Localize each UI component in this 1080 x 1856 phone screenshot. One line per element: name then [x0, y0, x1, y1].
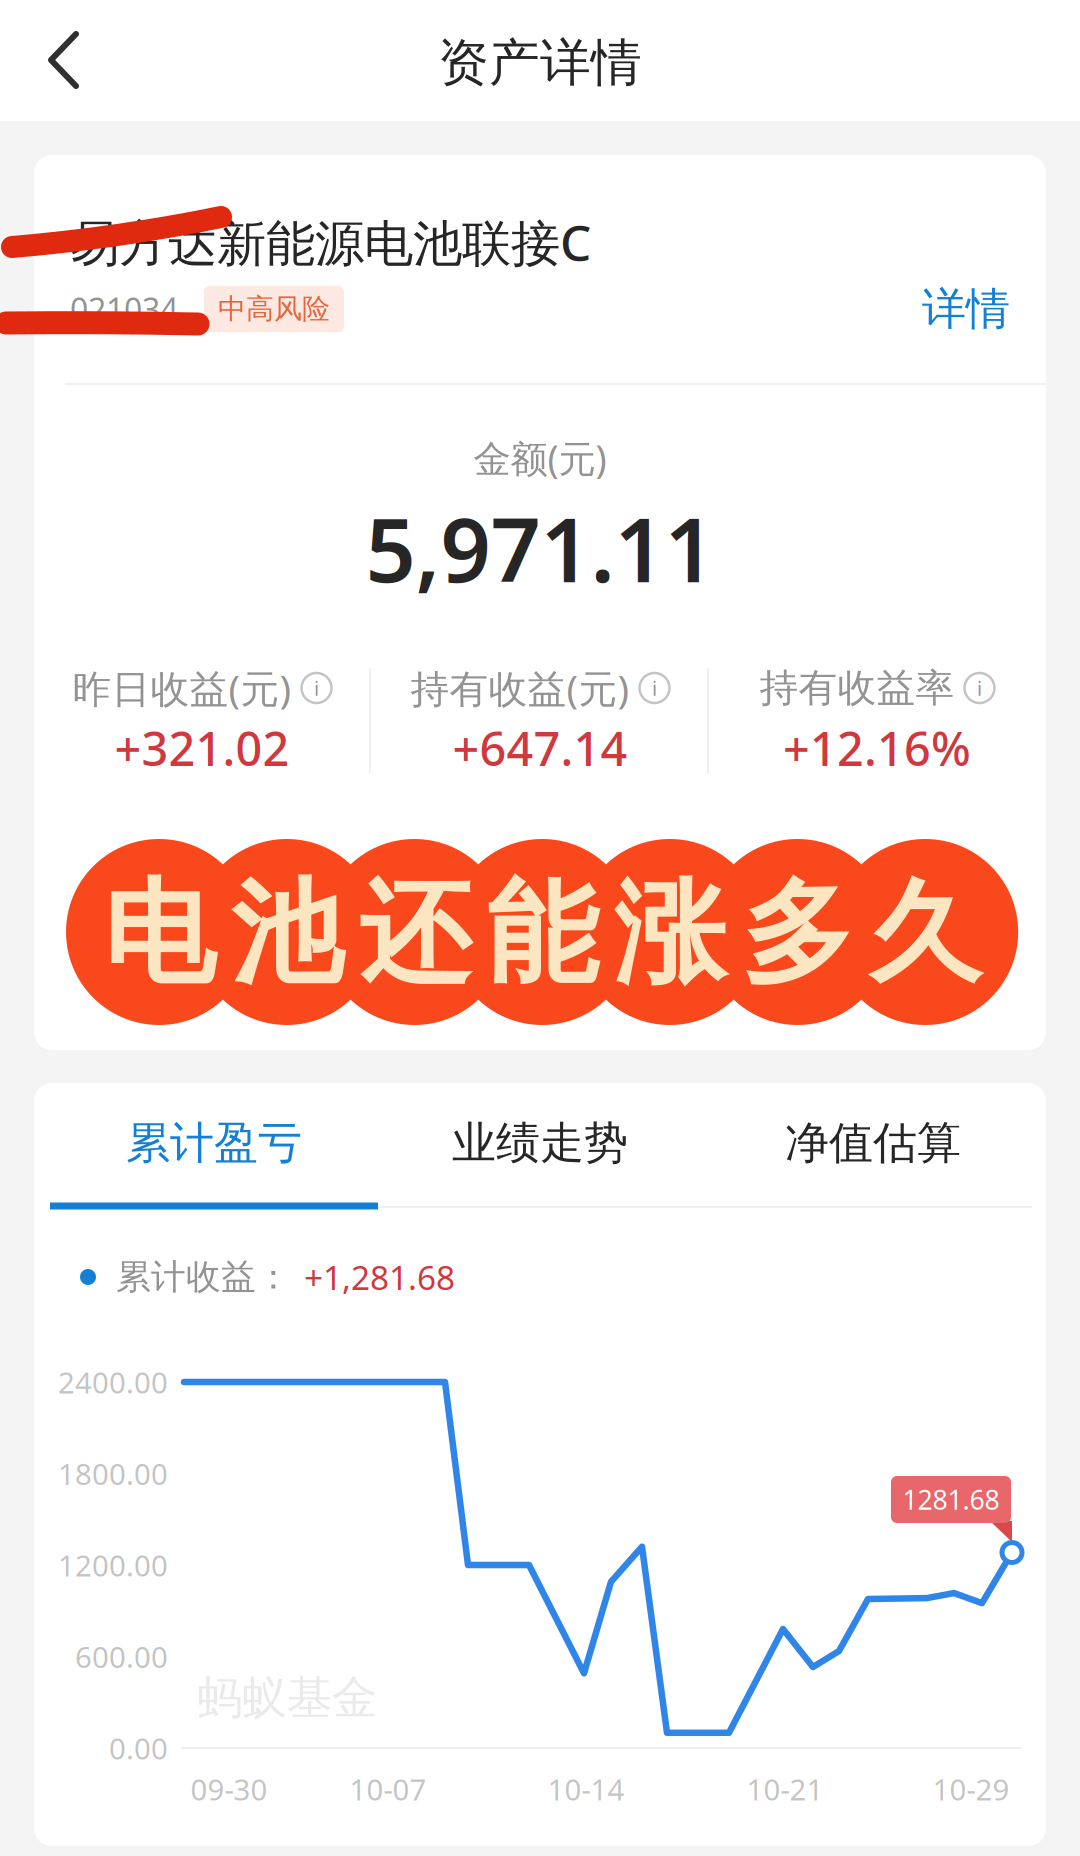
staticText: 累计收益： [116, 1256, 291, 1298]
staticText: 持有收益率 [759, 664, 954, 712]
button[interactable]: 详情 [922, 282, 1010, 336]
staticText: +321.02 [114, 717, 289, 779]
staticText: 0.00 [109, 1728, 168, 1767]
staticText: i [652, 675, 657, 701]
staticText: 1800.00 [58, 1454, 168, 1493]
button[interactable]: 说明 [639, 673, 669, 703]
staticText: 10-21 [746, 1769, 823, 1808]
staticText: 2400.00 [58, 1362, 168, 1401]
staticText: 021034 [70, 288, 178, 330]
button[interactable]: 说明 [301, 673, 331, 703]
staticText: 净值估算 [785, 1116, 961, 1170]
staticText: i [314, 675, 319, 701]
staticText: 涨 [614, 865, 726, 1003]
staticText: 10-07 [349, 1769, 426, 1808]
staticText: 09-30 [190, 1769, 267, 1808]
button[interactable]: 业绩走势 [375, 1093, 705, 1193]
staticText: 持有收益(元) [410, 662, 629, 714]
staticText: 中高风险 [218, 292, 330, 326]
staticText: +12.16% [783, 717, 971, 779]
staticText: 能 [486, 865, 598, 1003]
button[interactable]: 净值估算 [708, 1093, 1038, 1193]
staticText: 600.00 [75, 1637, 168, 1676]
staticText: 电 [103, 865, 215, 1003]
staticText: 金额(元) [473, 433, 606, 483]
staticText: 池 [231, 865, 343, 1003]
staticText: 业绩走势 [452, 1116, 628, 1170]
staticText: 久 [869, 865, 981, 1003]
button[interactable]: 累计盈亏 [49, 1093, 379, 1193]
staticText: 累计盈亏 [126, 1116, 302, 1170]
staticText: i [977, 675, 982, 701]
staticText: 详情 [922, 282, 1010, 336]
button[interactable]: 说明 [964, 673, 994, 703]
staticText: 1281.68 [902, 1482, 999, 1517]
staticText: 10-14 [547, 1769, 624, 1808]
staticText: 10-29 [932, 1769, 1009, 1808]
staticText: 5,971.11 [365, 490, 714, 606]
staticText: +647.14 [452, 717, 627, 779]
staticText: 多 [741, 865, 853, 1003]
staticText: 还 [358, 865, 470, 1003]
button[interactable]: Back [34, 12, 92, 108]
staticText: 易方达新能源电池联接C [70, 209, 591, 275]
staticText: +1,281.68 [304, 1255, 455, 1299]
staticText: 昨日收益(元) [72, 662, 291, 714]
staticText: 1200.00 [58, 1545, 168, 1584]
staticText: 蚂蚁基金 [197, 1670, 377, 1726]
staticText: 资产详情 [438, 32, 642, 94]
